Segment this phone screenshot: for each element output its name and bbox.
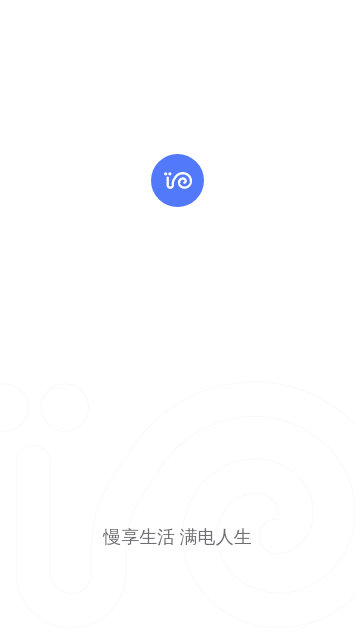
- staticText: 慢享生活 满电人生: [103, 524, 252, 549]
- button[interactable]: App logo: [151, 154, 204, 207]
